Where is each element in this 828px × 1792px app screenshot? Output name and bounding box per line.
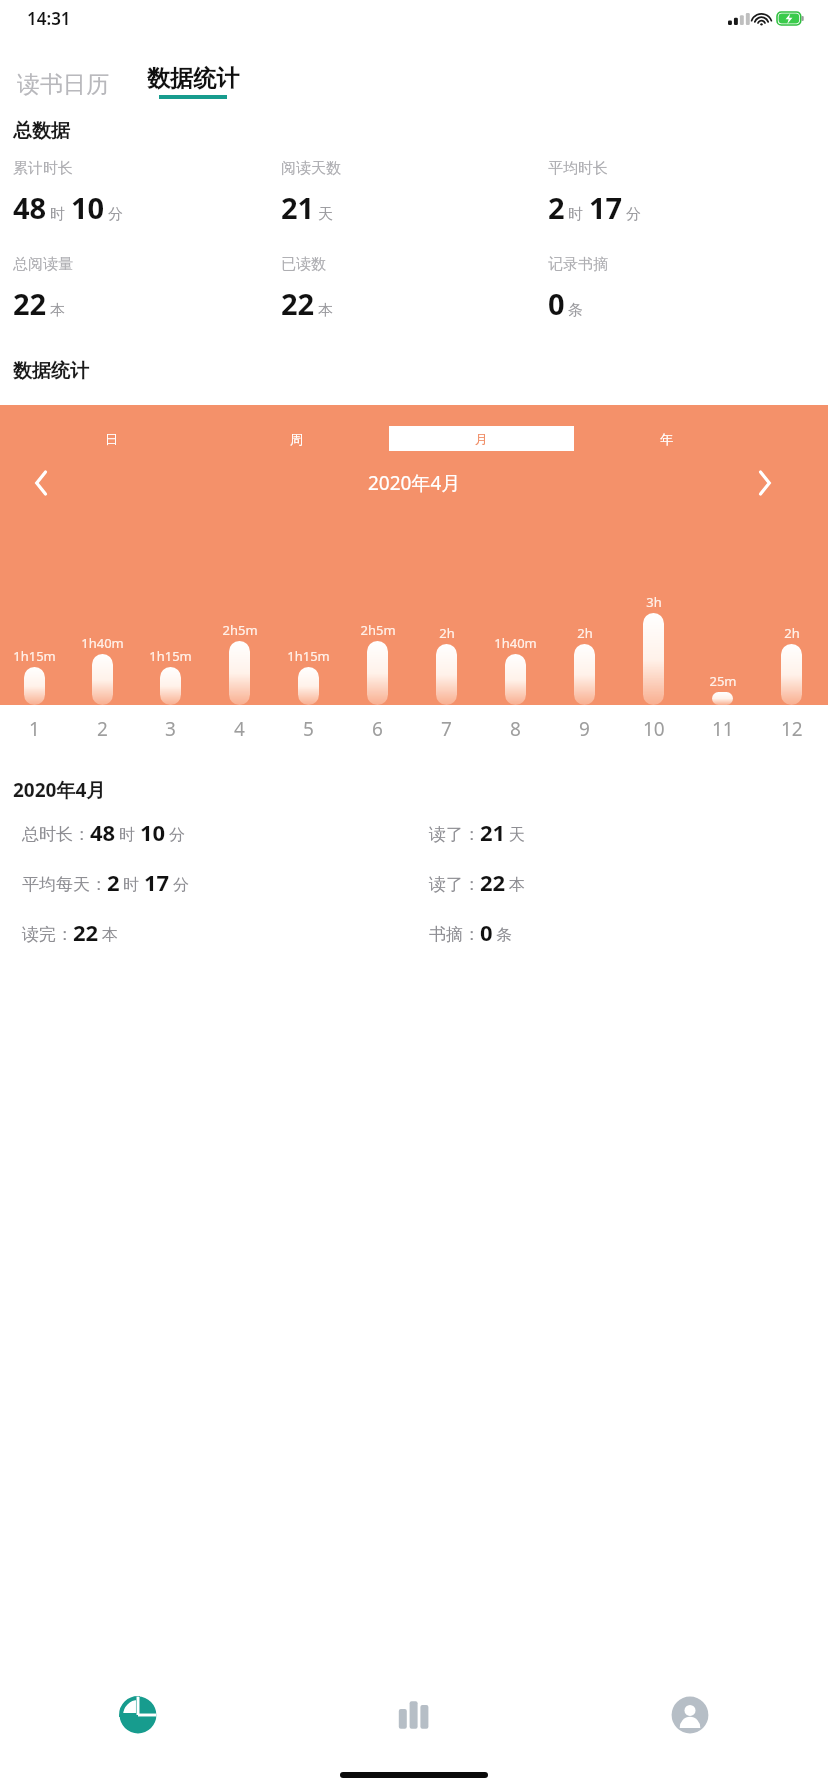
- button[interactable]: 周: [204, 426, 389, 451]
- button[interactable]: [92, 654, 113, 705]
- staticText: 6: [372, 716, 383, 742]
- staticText: 分: [173, 875, 189, 895]
- staticText: 天: [318, 205, 333, 224]
- button[interactable]: [24, 667, 45, 705]
- staticText: 4: [234, 716, 245, 742]
- staticText: 分: [169, 825, 185, 845]
- staticText: 25m: [709, 672, 737, 690]
- staticText: 读书日历: [17, 70, 109, 99]
- staticText: 0: [548, 284, 565, 323]
- button[interactable]: [229, 641, 250, 705]
- staticText: 周: [290, 431, 303, 447]
- staticText: 总时长：: [22, 824, 90, 845]
- staticText: 时: [119, 825, 135, 845]
- button[interactable]: [781, 644, 802, 705]
- staticText: 时: [50, 205, 65, 224]
- staticText: 10: [71, 188, 105, 227]
- staticText: 9: [579, 716, 590, 742]
- button[interactable]: 日: [18, 426, 204, 451]
- staticText: 0: [480, 917, 493, 947]
- staticText: 1h40m: [81, 634, 124, 652]
- staticText: 21: [480, 817, 506, 847]
- staticText: 1: [29, 716, 40, 742]
- staticText: 3: [165, 716, 176, 742]
- staticText: 年: [660, 431, 673, 447]
- staticText: 2020年4月: [368, 470, 461, 496]
- button[interactable]: [367, 641, 388, 705]
- staticText: 1h40m: [494, 634, 537, 652]
- staticText: 读完：: [22, 924, 73, 945]
- staticText: 2h5m: [360, 621, 396, 639]
- button[interactable]: [712, 692, 733, 705]
- staticText: 21: [281, 188, 315, 227]
- staticText: 已读数: [281, 255, 326, 274]
- staticText: 书摘：: [429, 924, 480, 945]
- staticText: 阅读天数: [281, 159, 341, 178]
- staticText: 8: [510, 716, 521, 742]
- button[interactable]: Profile: [552, 1672, 828, 1758]
- staticText: 天: [509, 825, 525, 845]
- staticText: 10: [140, 817, 166, 847]
- button[interactable]: 月: [389, 426, 574, 451]
- staticText: 平均时长: [548, 159, 608, 178]
- staticText: 条: [496, 925, 512, 945]
- button[interactable]: [643, 613, 664, 705]
- staticText: 17: [589, 188, 623, 227]
- button[interactable]: [298, 667, 319, 705]
- staticText: 总数据: [13, 119, 70, 143]
- staticText: 本: [509, 875, 525, 895]
- staticText: 1h15m: [287, 647, 330, 665]
- staticText: 2: [548, 188, 565, 227]
- staticText: 分: [626, 205, 641, 224]
- staticText: 5: [303, 716, 314, 742]
- staticText: 2020年4月: [13, 777, 106, 803]
- staticText: 时: [123, 875, 139, 895]
- staticText: 12: [781, 716, 803, 742]
- button[interactable]: [574, 644, 595, 705]
- staticText: 本: [318, 301, 333, 320]
- button[interactable]: 读书日历: [13, 68, 113, 101]
- staticText: 11: [712, 716, 734, 742]
- staticText: 1h15m: [13, 647, 56, 665]
- staticText: 时: [568, 205, 583, 224]
- staticText: 累计时长: [13, 159, 73, 178]
- staticText: 3h: [646, 593, 662, 611]
- button[interactable]: [436, 644, 457, 705]
- staticText: 22: [281, 284, 315, 323]
- button[interactable]: 年: [574, 426, 759, 451]
- button[interactable]: Statistics: [0, 1672, 276, 1758]
- staticText: 日: [105, 431, 118, 447]
- staticText: 1h15m: [149, 647, 192, 665]
- staticText: 48: [13, 188, 47, 227]
- staticText: 14:31: [27, 7, 71, 30]
- staticText: 2: [107, 867, 120, 897]
- staticText: 2h: [784, 624, 800, 642]
- staticText: 22: [13, 284, 47, 323]
- staticText: 数据统计: [147, 64, 239, 93]
- staticText: 17: [144, 867, 170, 897]
- button[interactable]: Bookshelf: [276, 1672, 552, 1758]
- staticText: 记录书摘: [548, 255, 608, 274]
- staticText: 7: [441, 716, 452, 742]
- staticText: 读了：: [429, 824, 480, 845]
- button[interactable]: Next month: [744, 463, 784, 503]
- staticText: 2h5m: [222, 621, 258, 639]
- staticText: 数据统计: [13, 359, 89, 383]
- staticText: 2: [97, 716, 108, 742]
- staticText: 48: [90, 817, 116, 847]
- staticText: 读了：: [429, 874, 480, 895]
- staticText: 2h: [439, 624, 455, 642]
- staticText: 条: [568, 301, 583, 320]
- staticText: 2h: [577, 624, 593, 642]
- staticText: 分: [108, 205, 123, 224]
- staticText: 总阅读量: [13, 255, 73, 274]
- button[interactable]: [160, 667, 181, 705]
- button[interactable]: [505, 654, 526, 705]
- button[interactable]: 数据统计: [143, 62, 243, 101]
- staticText: 10: [643, 716, 665, 742]
- staticText: 本: [50, 301, 65, 320]
- button[interactable]: Previous month: [22, 463, 62, 503]
- staticText: 22: [73, 917, 99, 947]
- staticText: 本: [102, 925, 118, 945]
- staticText: 月: [475, 431, 488, 447]
